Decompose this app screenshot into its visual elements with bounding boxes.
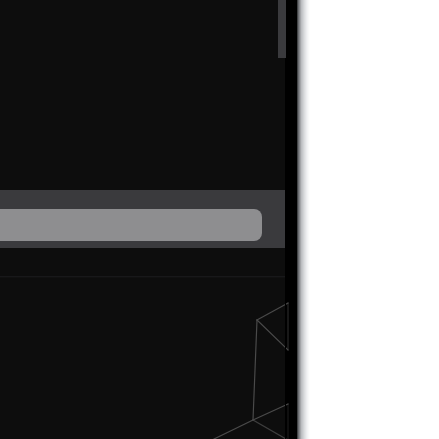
button[interactable]: Search xyxy=(0,209,262,241)
